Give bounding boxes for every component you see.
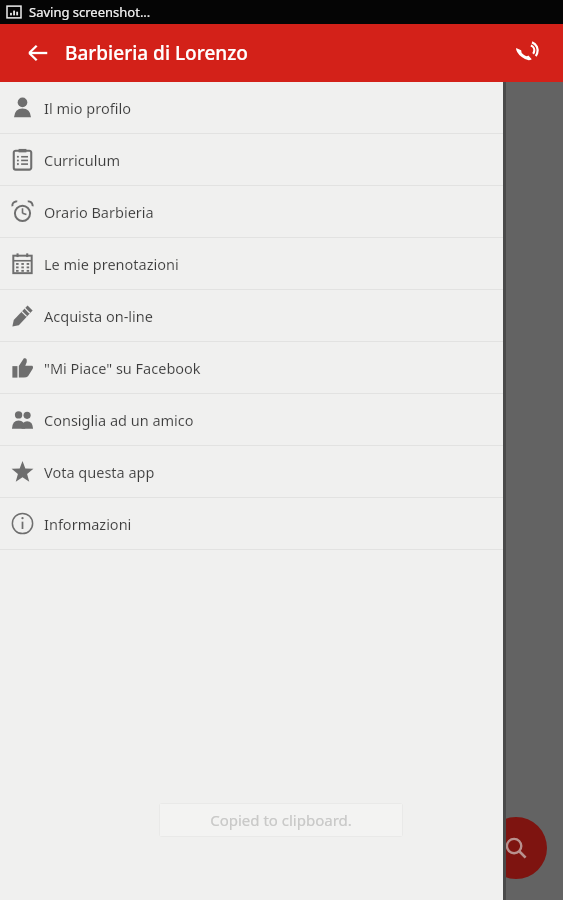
button[interactable]: Il mio profilo [0,82,503,133]
staticText: Curriculum [44,150,121,170]
staticText: "Mi Piace" su Facebook [44,358,201,378]
staticText: Barbieria di Lorenzo [65,40,248,66]
button[interactable]: Vota questa app [0,446,503,497]
staticText: Il mio profilo [44,98,131,118]
button[interactable]: Le mie prenotazioni [0,238,503,289]
staticText: Copied to clipboard. [210,810,352,830]
button[interactable]: Curriculum [0,134,503,185]
staticText: Acquista on-line [44,306,153,326]
staticText: Consiglia ad un amico [44,410,194,430]
button[interactable]: Acquista on-line [0,290,503,341]
staticText: Vota questa app [44,462,155,482]
button[interactable]: Back [14,29,62,77]
staticText: Saving screenshot... [29,3,151,21]
button[interactable]: Informazioni [0,498,503,549]
staticText: Le mie prenotazioni [44,254,179,274]
button[interactable]: Consiglia ad un amico [0,394,503,445]
button[interactable]: Orario Barbieria [0,186,503,237]
staticText: Orario Barbieria [44,202,154,222]
button[interactable]: "Mi Piace" su Facebook [0,342,503,393]
button[interactable]: Search [485,817,547,879]
staticText: Informazioni [44,514,132,534]
button[interactable]: Call [503,29,551,77]
